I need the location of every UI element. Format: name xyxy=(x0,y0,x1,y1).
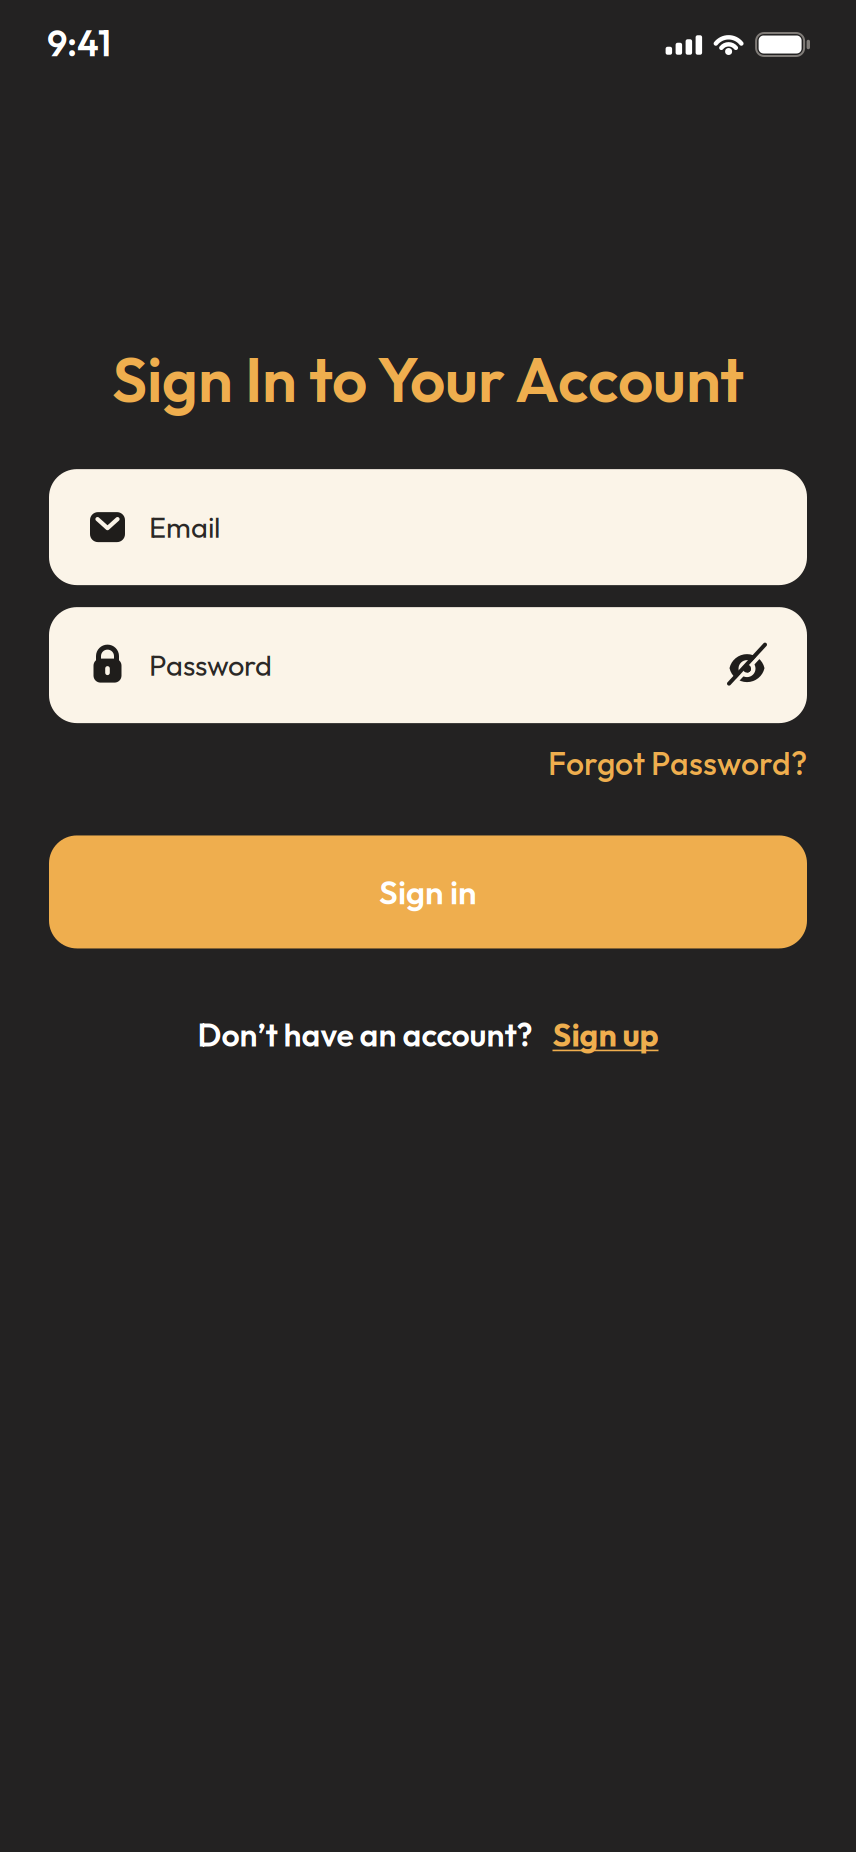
button[interactable]: Forgot Password? xyxy=(548,743,807,783)
staticText: Sign in xyxy=(379,871,477,913)
button[interactable]: Show password xyxy=(728,646,766,684)
staticText: Sign up xyxy=(552,1014,658,1055)
button[interactable]: Sign up xyxy=(552,1014,658,1055)
staticText: Email xyxy=(149,509,220,545)
staticText: Don’t have an account? xyxy=(197,1014,532,1055)
staticText: Password xyxy=(149,647,272,683)
staticText: Forgot Password? xyxy=(548,743,807,783)
button[interactable]: Sign in xyxy=(49,835,807,948)
staticText: 9:41 xyxy=(47,20,111,66)
button[interactable]: Password xyxy=(49,607,807,723)
staticText: Sign In to Your Account xyxy=(112,340,744,418)
button[interactable]: Email xyxy=(49,469,807,585)
